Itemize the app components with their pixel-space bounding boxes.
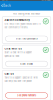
staticText: Chat with us [4, 47, 21, 50]
staticText: Call us [4, 72, 13, 75]
button[interactable]: Start a chat [5, 61, 48, 67]
staticText: Get help from experienced users in our c… [4, 23, 40, 29]
staticText: Start a chat [20, 62, 33, 65]
staticText: Back [3, 4, 11, 7]
staticText: Talk to a support specialist who can hel… [4, 76, 37, 83]
staticText: See phone numbers [17, 94, 36, 97]
staticText: Not seeing what you need? [13, 12, 40, 15]
button[interactable]: See phone numbers [5, 93, 48, 98]
button[interactable]: Visit the community [5, 36, 48, 41]
staticText: Ask the Community [4, 18, 29, 22]
staticText: 9:41 [2, 0, 8, 1]
staticText: Start a chat with a support specialist n… [4, 51, 32, 57]
button[interactable]: Back [0, 3, 11, 9]
staticText: Visit the community [15, 37, 37, 40]
